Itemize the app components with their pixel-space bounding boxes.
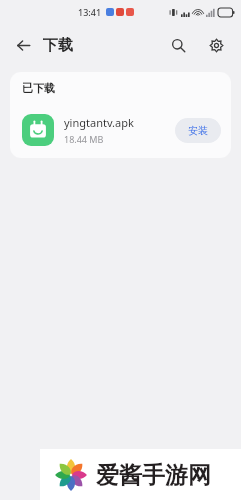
button[interactable]: Back [8, 30, 38, 60]
button[interactable]: 安装 [175, 118, 221, 143]
staticText: 18.44 MB [64, 133, 104, 145]
staticText: 安装 [188, 124, 208, 137]
button[interactable]: Search [163, 30, 193, 60]
staticText: 爱酱手游网 [96, 461, 211, 490]
staticText: 已下载 [22, 81, 55, 95]
button[interactable]: Settings [201, 30, 231, 60]
staticText: 下载 [43, 36, 73, 55]
button[interactable]: yingtantv.apk [10, 104, 231, 156]
staticText: 13:41 [78, 6, 102, 18]
staticText: yingtantv.apk [64, 115, 134, 130]
